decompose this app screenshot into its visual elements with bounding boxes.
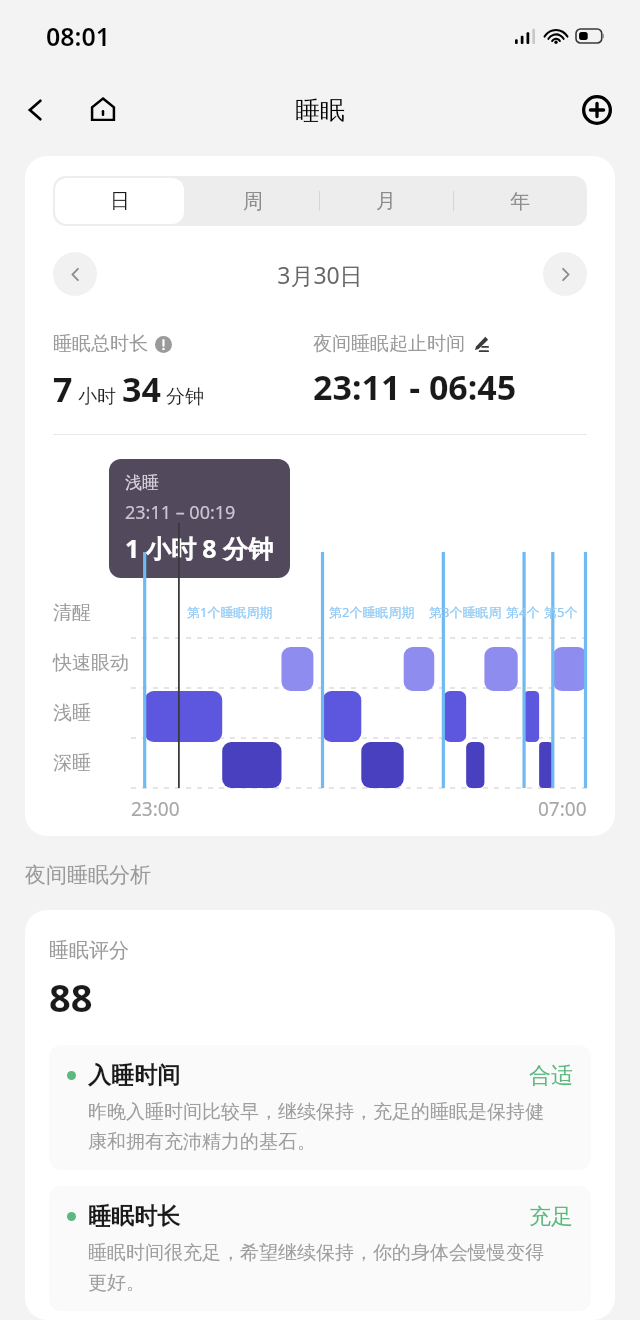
staticText: 周 — [243, 189, 263, 214]
staticText: 入睡时间 — [88, 1061, 180, 1090]
button[interactable]: 睡眠时长 — [49, 1186, 591, 1311]
staticText: 睡眠总时长 — [53, 332, 148, 356]
staticText: 34 — [122, 366, 161, 412]
staticText: 23:00 — [131, 796, 180, 822]
staticText: 昨晚入睡时间比较早，继续保持，充足的睡眠是保持健 康和拥有充沛精力的基石。 — [88, 1100, 544, 1154]
staticText: 睡眠评分 — [49, 938, 129, 963]
staticText: 7 — [53, 366, 73, 412]
staticText: 夜间睡眠分析 — [25, 862, 151, 888]
button[interactable]: 日 — [53, 176, 186, 226]
staticText: 合适 — [529, 1062, 573, 1090]
button[interactable]: Add — [574, 87, 620, 133]
staticText: 第1个睡眠周期 — [187, 603, 273, 621]
button[interactable]: 周 — [186, 176, 319, 226]
staticText: 3月30日 — [97, 259, 543, 290]
staticText: 07:00 — [538, 796, 587, 822]
button[interactable]: Home — [80, 87, 126, 133]
staticText: 浅睡 — [53, 701, 91, 725]
button[interactable]: 月 — [319, 176, 453, 226]
button[interactable]: 年 — [453, 176, 587, 226]
button[interactable]: Previous day — [53, 252, 97, 296]
button[interactable]: Back — [14, 88, 58, 132]
staticText: 清醒 — [53, 601, 91, 625]
staticText: 23:11 – 00:19 — [125, 500, 236, 525]
staticText: 1 小时 8 分钟 — [125, 531, 274, 565]
staticText: 快速眼动 — [53, 651, 129, 675]
staticText: 第4个睡眠周期 — [506, 603, 544, 621]
staticText: 23:11 - 06:45 — [313, 364, 517, 410]
staticText: 年 — [510, 189, 530, 214]
button[interactable]: 入睡时间 — [49, 1045, 591, 1170]
staticText: 睡眠时长 — [88, 1202, 180, 1231]
staticText: 深睡 — [53, 751, 91, 775]
staticText: 睡眠时间很充足，希望继续保持，你的身体会慢慢变得 更好。 — [88, 1241, 544, 1295]
staticText: 第3个睡眠周期 — [429, 603, 506, 621]
staticText: 睡眠 — [295, 95, 345, 126]
staticText: 月 — [376, 189, 396, 214]
staticText: 小时 — [78, 385, 116, 409]
staticText: 第5个睡眠周期 — [544, 603, 587, 621]
staticText: 88 — [49, 971, 93, 1023]
staticText: 第2个睡眠周期 — [329, 603, 415, 621]
staticText: 分钟 — [166, 385, 204, 409]
staticText: 08:01 — [46, 19, 111, 53]
staticText: 浅睡 — [125, 472, 159, 493]
staticText: 夜间睡眠起止时间 — [313, 332, 465, 356]
staticText: 日 — [110, 189, 130, 214]
staticText: 充足 — [529, 1203, 573, 1231]
button[interactable]: Next day — [543, 252, 587, 296]
